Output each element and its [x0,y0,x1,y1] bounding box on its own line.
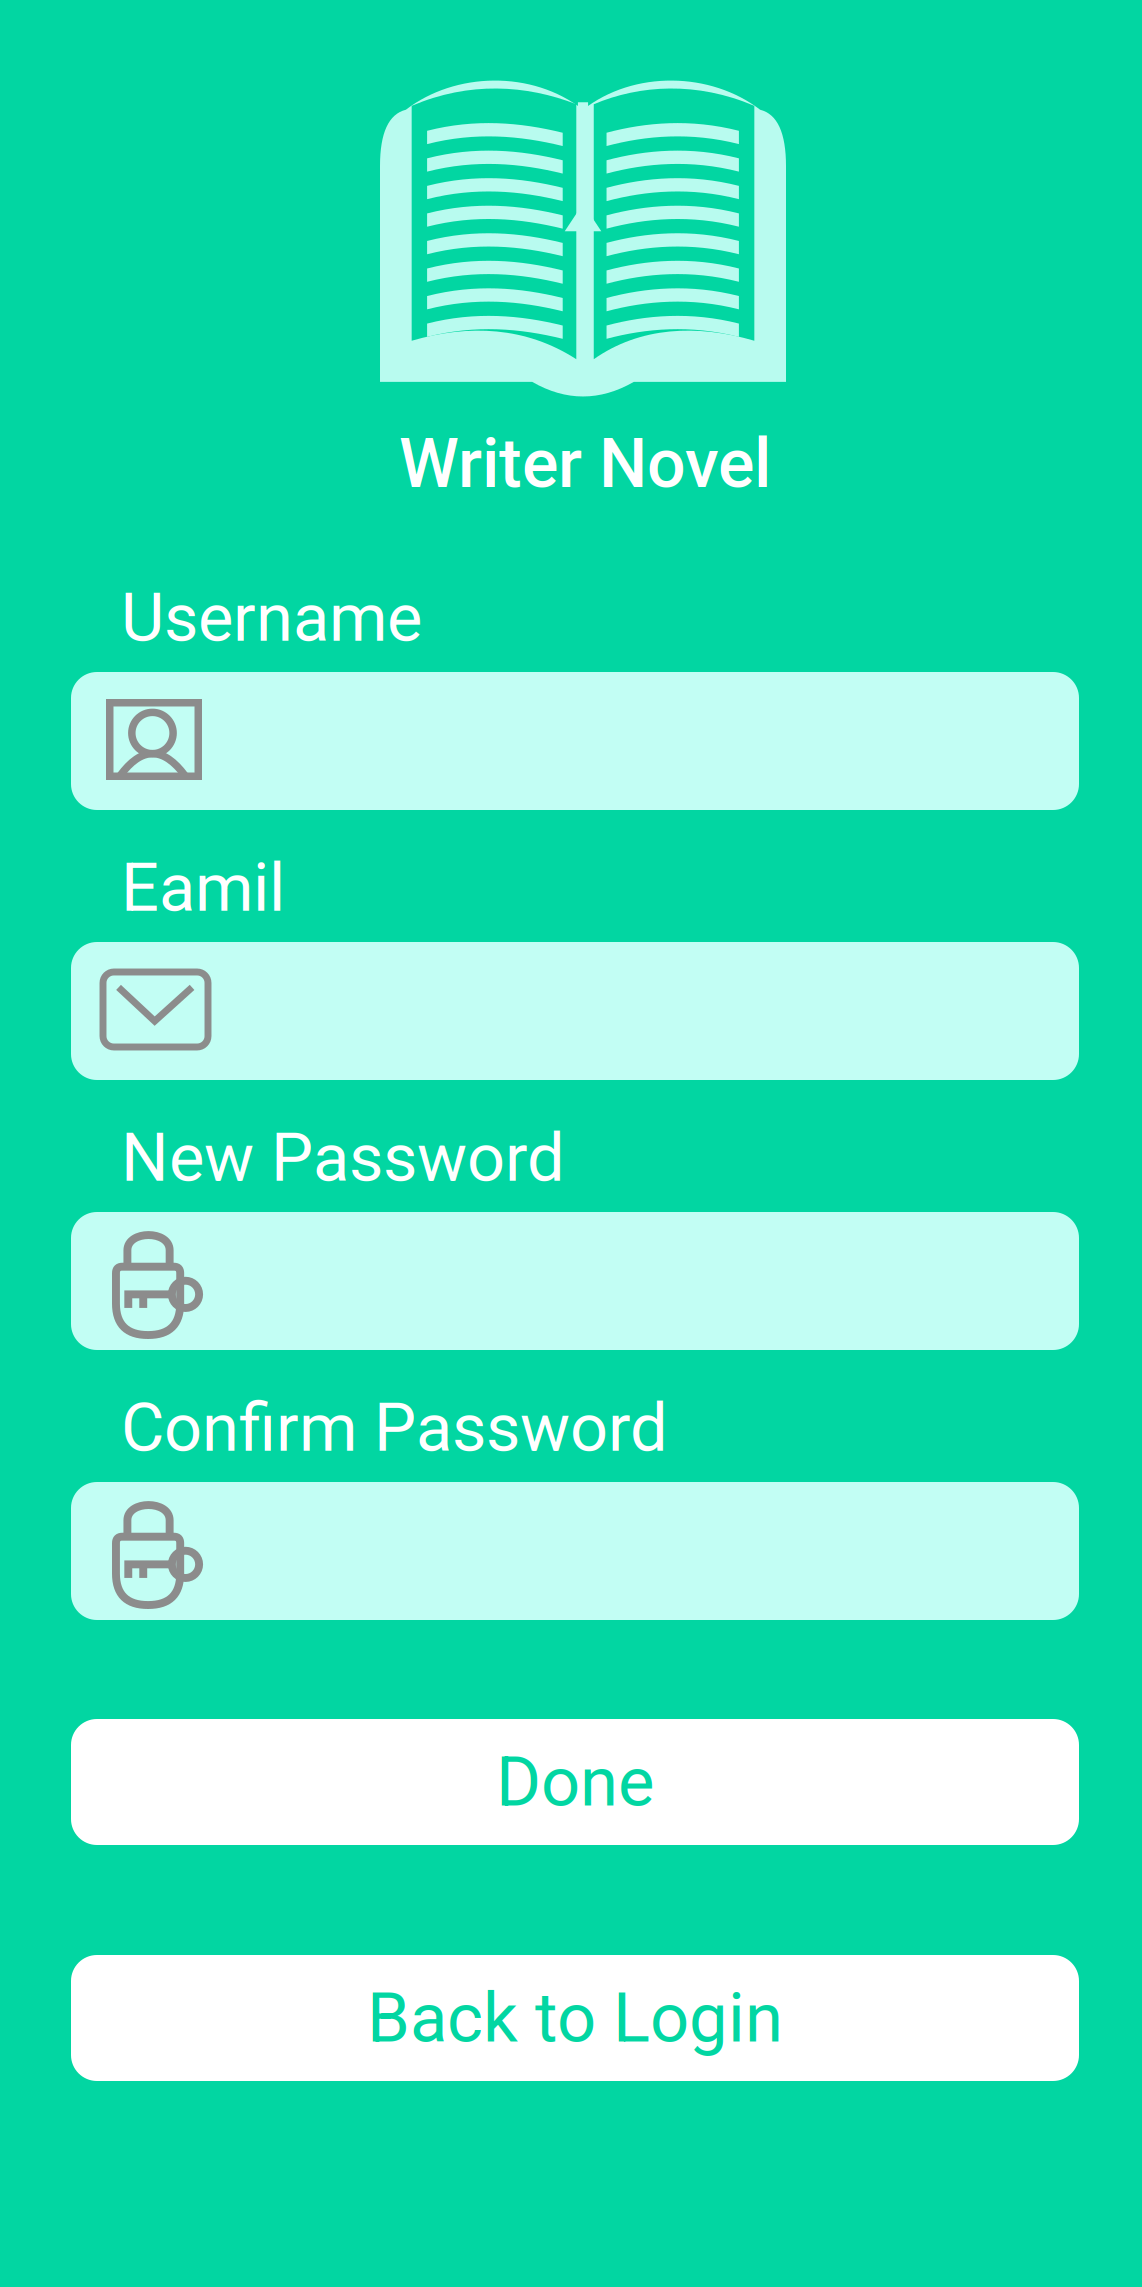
button[interactable]: Back to Login [71,1955,1079,2081]
button[interactable]: Confirm Password [71,1482,1079,1620]
staticText: Back to Login [367,1978,783,2058]
button[interactable]: Done [71,1719,1079,1845]
staticText: Confirm Password [121,1389,668,1467]
button[interactable]: Username [71,672,1079,810]
staticText: Writer Novel [399,424,771,504]
staticText: Done [496,1742,654,1822]
staticText: Eamil [121,849,285,927]
staticText: Username [121,579,422,657]
button[interactable]: Eamil [71,942,1079,1080]
staticText: New Password [121,1119,565,1197]
button[interactable]: New Password [71,1212,1079,1350]
